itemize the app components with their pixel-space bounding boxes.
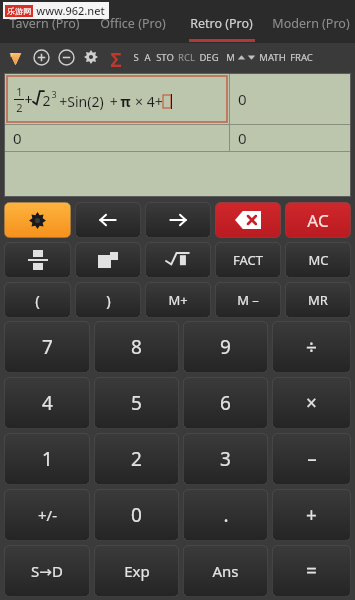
button[interactable]: Sum	[106, 47, 126, 67]
staticText: Tavern (Pro)	[9, 15, 80, 32]
staticText: M –	[237, 291, 259, 309]
button[interactable]: M+	[145, 282, 211, 318]
staticText: FRAC	[290, 51, 313, 64]
staticText: +/-	[38, 505, 57, 525]
staticText: .	[223, 502, 229, 528]
button[interactable]: 7	[4, 321, 90, 373]
staticText: www.962.net	[36, 3, 105, 18]
button[interactable]: Move right	[145, 202, 211, 238]
button[interactable]: Modern (Pro)	[266, 0, 355, 43]
staticText: 7	[42, 334, 53, 360]
staticText: Exp	[124, 561, 150, 581]
button[interactable]: Tavern (Pro)	[0, 0, 88, 43]
button[interactable]: 5	[94, 377, 179, 429]
staticText: ×	[306, 390, 317, 416]
button[interactable]: ×	[272, 377, 351, 429]
staticText: 4	[42, 390, 53, 416]
staticText: AC	[307, 209, 329, 232]
button[interactable]: FACT	[215, 242, 281, 278]
staticText: Modern (Pro)	[272, 15, 350, 32]
button[interactable]: Zoom in	[30, 46, 52, 68]
button[interactable]: 1	[4, 433, 90, 485]
button[interactable]: Fraction	[4, 242, 71, 278]
staticText: 2	[16, 100, 23, 115]
staticText: 乐游网	[7, 6, 31, 16]
button[interactable]: –	[272, 433, 351, 485]
staticText: 3	[51, 88, 57, 100]
button[interactable]: Ans	[183, 545, 268, 597]
staticText: STO	[156, 51, 174, 64]
staticText: 0	[131, 502, 142, 528]
staticText: Ans	[212, 561, 239, 581]
button[interactable]: )	[75, 282, 141, 318]
staticText: M	[226, 51, 235, 64]
staticText: Σ	[110, 47, 122, 67]
button[interactable]: 8	[94, 321, 179, 373]
button[interactable]: Move left	[75, 202, 141, 238]
staticText: =	[306, 558, 317, 584]
button[interactable]: Exp	[94, 545, 179, 597]
button[interactable]: Settings	[80, 46, 102, 68]
staticText: FACT	[233, 251, 263, 269]
staticText: 2	[131, 446, 142, 472]
button[interactable]: Premium	[4, 46, 26, 68]
staticText: 1	[16, 84, 23, 99]
staticText: 8	[131, 334, 142, 360]
button[interactable]: .	[183, 489, 268, 541]
button[interactable]: +	[272, 489, 351, 541]
staticText: 6	[220, 390, 231, 416]
button[interactable]: Square root	[145, 242, 211, 278]
button[interactable]: S→D	[4, 545, 90, 597]
staticText: +	[24, 90, 33, 109]
button[interactable]: ÷	[272, 321, 351, 373]
staticText: +Sin(2)	[59, 92, 104, 111]
button[interactable]: 6	[183, 377, 268, 429]
staticText: 1	[42, 446, 53, 472]
button[interactable]: MR	[285, 282, 351, 318]
button[interactable]: +/-	[4, 489, 90, 541]
staticText: 9	[220, 334, 231, 360]
staticText: S→D	[31, 561, 63, 581]
staticText: M+	[168, 291, 188, 309]
button[interactable]: M –	[215, 282, 281, 318]
button[interactable]: Zoom out	[55, 46, 77, 68]
staticText: A	[144, 51, 151, 64]
staticText: 0	[238, 89, 247, 109]
button[interactable]: 0	[94, 489, 179, 541]
staticText: +	[306, 502, 317, 528]
button[interactable]: Power	[75, 242, 141, 278]
staticText: 5	[131, 390, 142, 416]
staticText: )	[106, 290, 111, 310]
button[interactable]: 3	[183, 433, 268, 485]
staticText: –	[307, 446, 317, 472]
staticText: MC	[308, 251, 329, 269]
staticText: MR	[308, 291, 328, 309]
button[interactable]: 2	[94, 433, 179, 485]
staticText: 0	[13, 128, 22, 148]
staticText: (	[35, 290, 40, 310]
staticText: 3	[220, 446, 231, 472]
staticText: Retro (Pro)	[190, 15, 253, 32]
button[interactable]: Backspace	[215, 202, 281, 238]
button[interactable]: Retro (Pro)	[177, 0, 266, 43]
staticText: 2	[42, 91, 51, 110]
button[interactable]: =	[272, 545, 351, 597]
staticText: × 4+	[131, 92, 163, 111]
staticText: S	[133, 51, 139, 64]
staticText: RCL	[178, 51, 195, 64]
staticText: Office (Pro)	[100, 15, 166, 32]
staticText: π	[120, 92, 131, 111]
button[interactable]: 4	[4, 377, 90, 429]
staticText: MATH	[259, 51, 286, 64]
staticText: +	[104, 92, 120, 111]
button[interactable]: Settings	[4, 202, 71, 238]
button[interactable]: Office (Pro)	[88, 0, 177, 43]
button[interactable]: AC	[285, 202, 351, 238]
button[interactable]: MC	[285, 242, 351, 278]
staticText: ÷	[306, 334, 317, 360]
button[interactable]: (	[4, 282, 71, 318]
staticText: DEG	[199, 51, 219, 64]
staticText: 0	[238, 128, 247, 148]
button[interactable]: 9	[183, 321, 268, 373]
